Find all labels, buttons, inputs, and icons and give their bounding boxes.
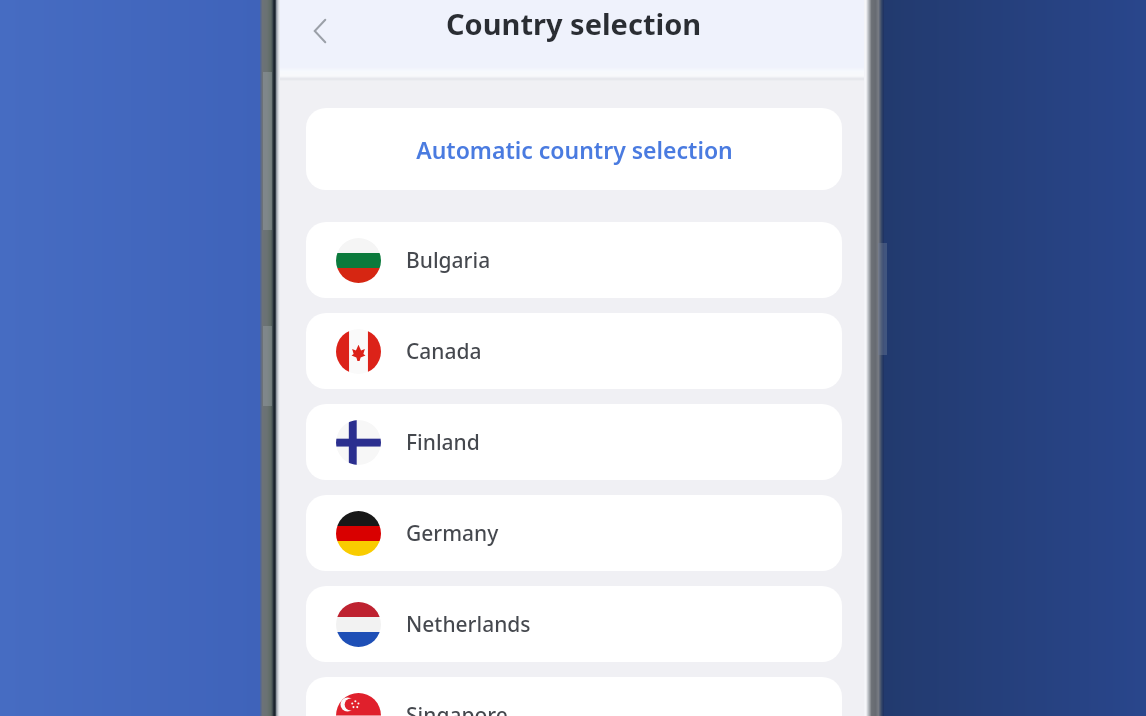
staticText: Automatic country selection bbox=[416, 134, 733, 165]
button[interactable]: Singapore bbox=[306, 677, 842, 716]
staticText: Netherlands bbox=[406, 610, 531, 639]
button[interactable]: Back bbox=[298, 9, 342, 53]
staticText: Country selection bbox=[446, 4, 702, 43]
button[interactable]: Netherlands bbox=[306, 586, 842, 662]
button[interactable]: Finland bbox=[306, 404, 842, 480]
staticText: Germany bbox=[406, 519, 499, 548]
staticText: Singapore bbox=[406, 701, 508, 716]
button[interactable]: Canada bbox=[306, 313, 842, 389]
button[interactable]: Bulgaria bbox=[306, 222, 842, 298]
button[interactable]: Germany bbox=[306, 495, 842, 571]
button[interactable]: Automatic country selection bbox=[306, 108, 842, 190]
staticText: Finland bbox=[406, 428, 480, 457]
staticText: Bulgaria bbox=[406, 246, 491, 275]
staticText: Canada bbox=[406, 337, 482, 366]
